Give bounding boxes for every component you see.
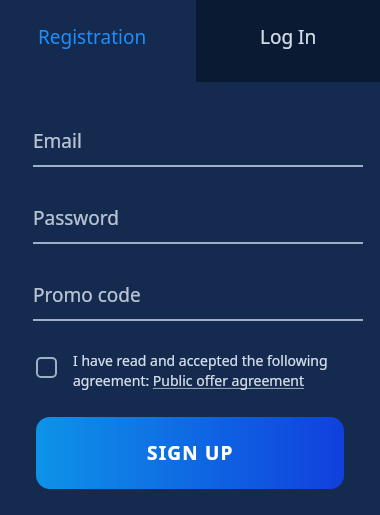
button[interactable]: Accept agreement checkbox [36,351,358,391]
staticText: Registration [38,24,147,50]
staticText: I have read and accepted the following a… [73,351,358,391]
staticText: Email [33,128,82,154]
button[interactable]: Email [33,128,363,167]
staticText: Password [33,205,119,231]
button[interactable]: Registration [0,0,196,82]
button[interactable]: Promo code [33,282,363,321]
button[interactable]: SIGN UP [36,417,344,489]
staticText: Log In [260,24,317,50]
staticText: SIGN UP [147,440,234,466]
button[interactable]: Log In [196,0,380,82]
other: Accept agreement checkbox [36,357,57,378]
staticText: Promo code [33,282,141,308]
button[interactable]: Password [33,205,363,244]
